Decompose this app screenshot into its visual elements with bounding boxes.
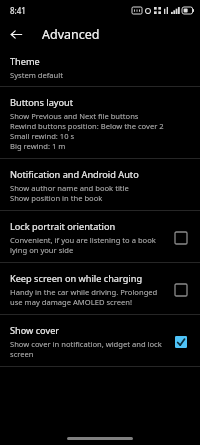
staticText: Advanced (42, 26, 100, 43)
staticText: Show position in the book (10, 193, 103, 203)
button[interactable]: Theme (0, 55, 200, 80)
staticText: Handy in the car while driving. Prolonge… (10, 287, 158, 297)
staticText: Notification and Android Auto (10, 168, 139, 181)
button[interactable]: Lock portrait orientation (0, 220, 200, 255)
staticText: Big rewind: 1 m (10, 141, 66, 151)
button[interactable]: Show cover (0, 324, 200, 359)
button[interactable]: Unchecked, toggle on (172, 229, 190, 247)
staticText: Buttons layout (10, 96, 74, 109)
staticText: Keep screen on while charging (10, 272, 143, 285)
staticText: Lock portrait orientation (10, 220, 116, 233)
staticText: screen (10, 349, 34, 359)
staticText: Show author name and book title (10, 183, 129, 193)
button[interactable]: Notification and Android Auto (0, 168, 200, 203)
staticText: Small rewind: 10 s (10, 131, 75, 141)
staticText: Show cover (10, 324, 60, 337)
button[interactable]: Checked, toggle off (172, 333, 190, 351)
staticText: Theme (10, 55, 40, 68)
staticText: Convenient, if you are listening to a bo… (10, 235, 156, 245)
staticText: Show Previous and Next file buttons (10, 111, 139, 121)
staticText: Rewind buttons position: Below the cover… (10, 121, 164, 131)
staticText: 8:41 (10, 5, 26, 16)
staticText: Show cover in notification, widget and l… (10, 339, 162, 349)
button[interactable]: Buttons layout (0, 96, 200, 151)
staticText: lying on your side (10, 245, 74, 255)
button[interactable]: Back (6, 24, 26, 44)
staticText: use may damage AMOLED screen! (10, 297, 132, 307)
staticText: System default (10, 70, 63, 80)
button[interactable]: Unchecked, toggle on (172, 281, 190, 299)
button[interactable]: Keep screen on while charging (0, 272, 200, 307)
